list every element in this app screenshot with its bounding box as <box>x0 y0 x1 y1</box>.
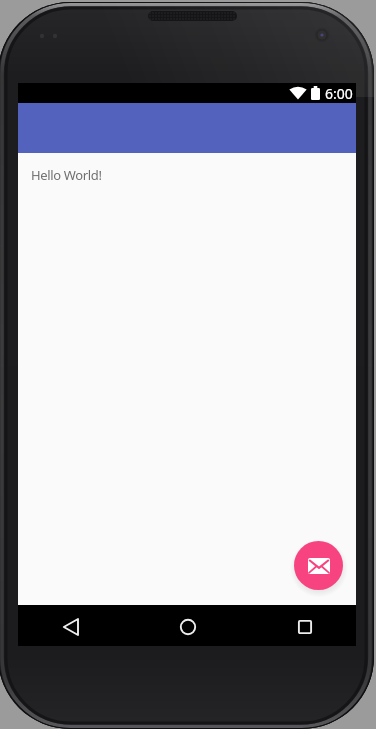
button[interactable] <box>287 609 323 645</box>
button[interactable] <box>170 609 206 645</box>
button[interactable] <box>294 541 343 590</box>
staticText: 6:00 <box>325 84 353 103</box>
button[interactable] <box>53 609 89 645</box>
staticText: Hello World! <box>31 166 102 184</box>
